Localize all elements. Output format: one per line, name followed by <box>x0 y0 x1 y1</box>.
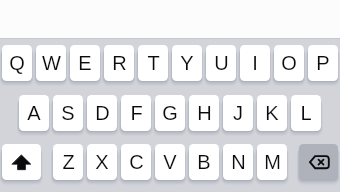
staticText: K <box>265 102 279 124</box>
button[interactable]: K <box>257 95 287 131</box>
button[interactable]: F <box>121 95 151 131</box>
button[interactable]: Q <box>2 45 32 81</box>
staticText: E <box>78 52 92 74</box>
button[interactable]: R <box>104 45 134 81</box>
button[interactable]: W <box>36 45 66 81</box>
button[interactable]: Z <box>53 144 83 180</box>
button[interactable]: H <box>189 95 219 131</box>
staticText: X <box>95 151 109 173</box>
button[interactable]: L <box>291 95 321 131</box>
staticText: W <box>42 52 61 74</box>
button[interactable]: P <box>308 45 338 81</box>
staticText: P <box>316 52 330 74</box>
staticText: T <box>147 52 160 74</box>
staticText: B <box>197 151 211 173</box>
staticText: S <box>61 102 75 124</box>
button[interactable]: A <box>19 95 49 131</box>
staticText: C <box>129 151 144 173</box>
button[interactable]: Shift <box>2 144 41 180</box>
staticText: M <box>264 151 281 173</box>
button[interactable]: U <box>206 45 236 81</box>
staticText: F <box>130 102 143 124</box>
button[interactable]: S <box>53 95 83 131</box>
staticText: Z <box>62 151 75 173</box>
button[interactable]: C <box>121 144 151 180</box>
staticText: A <box>27 102 41 124</box>
staticText: O <box>281 52 297 74</box>
staticText: Y <box>180 52 194 74</box>
staticText: J <box>233 102 243 124</box>
button[interactable]: G <box>155 95 185 131</box>
button[interactable]: J <box>223 95 253 131</box>
staticText: L <box>300 102 312 124</box>
staticText: G <box>162 102 178 124</box>
button[interactable]: Y <box>172 45 202 81</box>
button[interactable]: M <box>257 144 287 180</box>
button[interactable]: E <box>70 45 100 81</box>
staticText: U <box>214 52 229 74</box>
button[interactable]: Backspace <box>299 144 338 180</box>
staticText: V <box>163 151 177 173</box>
button[interactable]: N <box>223 144 253 180</box>
staticText: I <box>252 52 258 74</box>
button[interactable]: D <box>87 95 117 131</box>
button[interactable]: O <box>274 45 304 81</box>
staticText: H <box>197 102 212 124</box>
staticText: D <box>95 102 110 124</box>
staticText: Q <box>9 52 25 74</box>
button[interactable]: T <box>138 45 168 81</box>
button[interactable]: I <box>240 45 270 81</box>
staticText: N <box>231 151 246 173</box>
staticText: R <box>112 52 127 74</box>
button[interactable]: B <box>189 144 219 180</box>
button[interactable]: V <box>155 144 185 180</box>
button[interactable]: X <box>87 144 117 180</box>
